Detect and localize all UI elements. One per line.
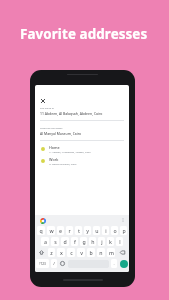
staticText: b xyxy=(89,249,93,256)
staticText: Pick me up at xyxy=(40,107,54,110)
staticText: c xyxy=(70,249,73,256)
staticText: n xyxy=(99,249,103,256)
button[interactable]: emoji xyxy=(59,259,66,268)
button[interactable]: l xyxy=(116,237,123,246)
button[interactable]: i xyxy=(102,226,109,235)
button[interactable]: n xyxy=(97,248,105,257)
staticText: p xyxy=(122,227,126,234)
button[interactable]: q xyxy=(37,226,45,235)
button[interactable]: x xyxy=(57,248,65,257)
button[interactable]: . xyxy=(111,259,117,268)
staticText: d xyxy=(63,238,67,245)
button[interactable]: e xyxy=(57,226,64,235)
staticText: Al Manyal Museum, Cairo xyxy=(40,131,82,136)
button[interactable]: r xyxy=(66,226,73,235)
staticText: / xyxy=(53,261,55,267)
button[interactable]: p xyxy=(120,226,127,235)
button[interactable]: Work xyxy=(40,157,124,166)
staticText: v xyxy=(80,249,83,256)
button[interactable]: h xyxy=(89,237,96,246)
button[interactable]: m xyxy=(107,248,115,257)
button[interactable]: shift xyxy=(36,248,46,257)
button[interactable]: / xyxy=(51,259,57,268)
staticText: . xyxy=(113,261,115,267)
staticText: z xyxy=(50,249,53,256)
staticText: l xyxy=(119,238,121,245)
staticText: e xyxy=(59,227,62,234)
button[interactable]: v xyxy=(77,248,85,257)
button[interactable]: ?123 xyxy=(36,259,49,268)
staticText: m xyxy=(109,249,114,256)
staticText: Favorite addresses xyxy=(20,25,148,43)
staticText: w xyxy=(49,227,54,234)
staticText: 11 Abdeen, Al Balaqsah, Abdeen, Cairo xyxy=(40,111,103,116)
staticText: Al Manyal Museum, Cairo xyxy=(49,163,77,166)
staticText: k xyxy=(109,238,112,245)
button[interactable]: del xyxy=(117,248,128,257)
staticText: s xyxy=(54,238,57,245)
button[interactable]: d xyxy=(61,237,69,246)
staticText: f xyxy=(74,238,76,245)
button[interactable]: z xyxy=(48,248,55,257)
staticText: Work xyxy=(49,157,59,162)
staticText: a xyxy=(44,238,47,245)
button[interactable]: f xyxy=(71,237,78,246)
button[interactable]: Enter xyxy=(118,258,129,269)
button[interactable]: g xyxy=(80,237,87,246)
staticText: y xyxy=(86,227,89,234)
button[interactable]: More options xyxy=(120,217,126,223)
staticText: Where are you going? xyxy=(40,127,63,130)
button[interactable]: k xyxy=(107,237,114,246)
staticText: Home xyxy=(49,145,60,150)
staticText: j xyxy=(101,238,103,245)
staticText: ?123 xyxy=(39,262,46,266)
staticText: i xyxy=(105,227,107,234)
button[interactable]: Google xyxy=(39,217,46,224)
staticText: x xyxy=(60,249,63,256)
staticText: u xyxy=(95,227,99,234)
staticText: h xyxy=(91,238,95,245)
staticText: 11 Abdeen, Al Balaqsah, Abdeen, Cairo xyxy=(49,151,91,154)
button[interactable]: u xyxy=(93,226,100,235)
staticText: r xyxy=(68,227,71,234)
button[interactable]: o xyxy=(111,226,118,235)
button[interactable]: s xyxy=(51,237,59,246)
staticText: t xyxy=(78,227,80,234)
button[interactable]: j xyxy=(98,237,105,246)
button[interactable]: Close xyxy=(40,98,46,104)
button[interactable]: c xyxy=(67,248,75,257)
button[interactable]: b xyxy=(87,248,95,257)
button[interactable]: y xyxy=(84,226,91,235)
staticText: o xyxy=(113,227,117,234)
button[interactable]: w xyxy=(47,226,55,235)
button[interactable]: Home xyxy=(40,145,124,154)
button[interactable]: t xyxy=(75,226,82,235)
staticText: q xyxy=(39,227,43,234)
button[interactable]: a xyxy=(41,237,49,246)
staticText: g xyxy=(82,238,86,245)
